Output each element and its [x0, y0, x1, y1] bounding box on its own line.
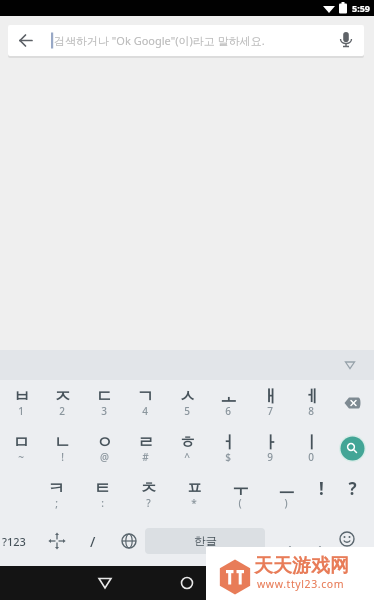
staticText: ㅐ [262, 386, 279, 407]
staticText: 한글 [194, 534, 217, 548]
staticText: ㅊ [140, 478, 157, 499]
staticText: ㅜ [232, 478, 249, 499]
staticText: ( [238, 496, 242, 510]
staticText: ㅎ [179, 432, 196, 453]
staticText: ? [348, 477, 357, 499]
button[interactable] [0, 566, 124, 600]
staticText: ? [146, 496, 151, 510]
staticText: 6 [225, 404, 231, 418]
staticText: 8 [308, 404, 314, 418]
button[interactable]: ㅍ [174, 472, 214, 518]
staticText: ㅔ [303, 386, 320, 407]
button[interactable]: ?123 [0, 528, 28, 554]
staticText: ^ [184, 450, 190, 464]
button[interactable] [0, 350, 374, 380]
staticText: ㅏ [262, 432, 279, 453]
staticText: 5:59 [352, 2, 370, 14]
staticText: ㅇ [96, 432, 113, 453]
staticText: 검색하거나 "Ok Google"(이)라고 말하세요. [54, 33, 265, 48]
staticText: www.ttyl23.com [257, 577, 345, 591]
staticText: ㄴ [54, 432, 71, 453]
staticText: ㄱ [137, 386, 154, 407]
button[interactable]: ? [332, 472, 372, 518]
staticText: @ [100, 450, 109, 464]
staticText: 2 [59, 404, 65, 418]
staticText: ! [319, 477, 324, 499]
staticText: ㄹ [137, 432, 154, 453]
staticText: ㅗ [220, 386, 237, 407]
staticText: ㅁ [13, 432, 30, 453]
button[interactable]: ㅐ [250, 380, 290, 426]
staticText: 7 [267, 404, 273, 418]
button[interactable]: ㄷ [84, 380, 124, 426]
button[interactable] [249, 566, 374, 600]
button[interactable]: ㅡ [266, 472, 306, 518]
button[interactable]: ㅁ [1, 426, 41, 472]
staticText: ! [61, 450, 64, 464]
staticText: ㄷ [96, 386, 113, 407]
button[interactable]: ㅊ [128, 472, 168, 518]
staticText: ㅅ [179, 386, 196, 407]
staticText: $ [225, 450, 231, 464]
button[interactable]: ㅅ [167, 380, 207, 426]
staticText: 0 [308, 450, 314, 464]
button[interactable]: ㄱ [125, 380, 165, 426]
staticText: ~ [18, 450, 24, 464]
staticText: ㅓ [220, 432, 237, 453]
button[interactable] [124, 566, 249, 600]
button[interactable]: ㅋ [36, 472, 76, 518]
staticText: 4 [142, 404, 148, 418]
button[interactable]: 한글 [145, 528, 265, 554]
staticText: ㅌ [94, 478, 111, 499]
staticText: * [191, 496, 197, 510]
button[interactable]: ㅣ [291, 426, 331, 472]
button[interactable]: ㅌ [82, 472, 122, 518]
staticText: ㅣ [303, 432, 320, 453]
button[interactable]: ㄴ [42, 426, 82, 472]
button[interactable]: / [82, 528, 104, 554]
staticText: 天天游戏网 [254, 554, 349, 578]
staticText: 5 [184, 404, 190, 418]
staticText: ) [284, 496, 288, 510]
button[interactable]: 검색하거나 "Ok Google"(이)라고 말하세요. [8, 25, 364, 56]
staticText: ㅈ [54, 386, 71, 407]
staticText: : [101, 496, 104, 510]
staticText: ㅂ [13, 386, 30, 407]
button[interactable]: ㅓ [208, 426, 248, 472]
button[interactable]: ㅂ [1, 380, 41, 426]
staticText: 9 [267, 450, 273, 464]
button[interactable]: ㅇ [84, 426, 124, 472]
button[interactable]: ㄹ [125, 426, 165, 472]
staticText: ; [55, 496, 58, 510]
button[interactable]: ㅔ [291, 380, 331, 426]
staticText: 1 [18, 404, 24, 418]
staticText: 3 [101, 404, 107, 418]
button[interactable]: ㅏ [250, 426, 290, 472]
staticText: # [142, 450, 149, 464]
staticText: ㅡ [278, 478, 295, 499]
button[interactable]: ㅈ [42, 380, 82, 426]
button[interactable]: ㅗ [208, 380, 248, 426]
staticText: ㅍ [186, 478, 203, 499]
staticText: ㅋ [48, 478, 65, 499]
button[interactable]: ㅜ [220, 472, 260, 518]
staticText: ?123 [2, 534, 26, 549]
button[interactable]: ㅎ [167, 426, 207, 472]
button[interactable]: ! [301, 472, 341, 518]
staticText: / [90, 532, 96, 551]
